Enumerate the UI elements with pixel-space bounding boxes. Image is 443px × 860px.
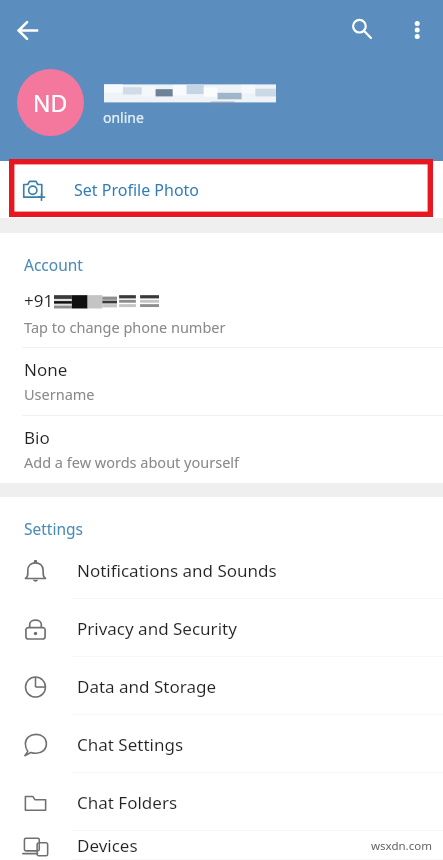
button[interactable]: Devices <box>0 831 443 860</box>
button[interactable]: Chat Settings <box>0 715 443 773</box>
button[interactable]: Bio <box>0 416 443 483</box>
staticText: Settings <box>24 518 83 539</box>
staticText: ND <box>33 87 68 118</box>
button[interactable]: Data and Storage <box>0 657 443 715</box>
staticText: Notifications and Sounds <box>77 559 277 582</box>
staticText: Data and Storage <box>77 675 216 698</box>
staticText: Username <box>24 384 95 404</box>
staticText: Devices <box>77 834 138 857</box>
button[interactable]: None <box>0 348 443 415</box>
staticText: wsxdn.com <box>371 838 432 854</box>
staticText: Tap to change phone number <box>24 317 226 337</box>
button[interactable]: More options <box>393 7 439 53</box>
staticText: None <box>24 358 68 381</box>
button[interactable]: Back <box>3 6 51 54</box>
staticText: Chat Folders <box>77 791 178 814</box>
button[interactable]: Set Profile Photo <box>0 161 443 218</box>
staticText: Privacy and Security <box>77 617 237 640</box>
button[interactable]: ND <box>17 69 84 136</box>
staticText: Set Profile Photo <box>74 179 200 201</box>
button[interactable]: Privacy and Security <box>0 599 443 657</box>
staticText: Chat Settings <box>77 733 184 756</box>
staticText: Bio <box>24 426 50 449</box>
staticText: +91 <box>24 289 54 312</box>
button[interactable]: Notifications and Sounds <box>0 541 443 599</box>
button[interactable]: Search <box>338 6 384 52</box>
button[interactable]: +91 <box>0 289 443 347</box>
staticText: Account <box>24 254 83 275</box>
button[interactable]: Chat Folders <box>0 773 443 831</box>
staticText: Add a few words about yourself <box>24 452 240 472</box>
staticText: online <box>103 108 144 127</box>
